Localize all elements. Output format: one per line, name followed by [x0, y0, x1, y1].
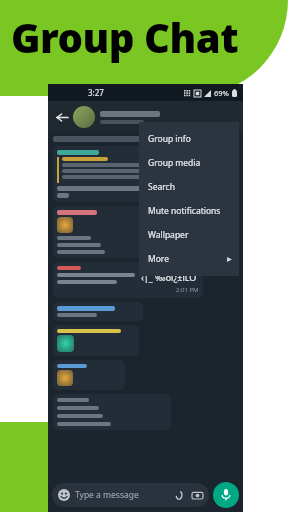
button[interactable]: Group avatar — [73, 106, 95, 128]
staticText: Group info — [148, 133, 191, 145]
staticText: Search — [148, 181, 175, 193]
button[interactable]: Type a message — [52, 483, 209, 507]
button[interactable]: Back — [54, 109, 70, 125]
button[interactable] — [53, 146, 188, 202]
button[interactable] — [53, 206, 173, 258]
staticText: 69% — [214, 88, 229, 98]
staticText: Wallpaper — [148, 229, 189, 241]
staticText: More — [148, 253, 169, 265]
button[interactable]: More — [139, 247, 239, 271]
staticText: Group media — [148, 157, 201, 169]
button[interactable]: Search — [139, 175, 239, 199]
staticText: Group Chat — [11, 10, 239, 64]
button[interactable]: Wallpaper — [139, 223, 239, 247]
button[interactable]: Voice message — [213, 482, 239, 508]
staticText: 3:27 — [88, 87, 104, 98]
staticText: ‹|_ ‰ol¿±ıLÖ — [141, 271, 197, 283]
button[interactable]: Group info — [139, 127, 239, 151]
staticText: Mute notifications — [148, 205, 221, 217]
staticText: Type a message — [75, 489, 139, 501]
button[interactable] — [53, 360, 125, 390]
button[interactable]: Attach — [173, 489, 185, 501]
button[interactable]: Camera — [191, 489, 203, 501]
button[interactable] — [53, 325, 139, 356]
button[interactable]: Mute notifications — [139, 199, 239, 223]
button[interactable] — [53, 394, 171, 430]
staticText: 2:01 PM — [176, 286, 199, 294]
button[interactable]: Group media — [139, 151, 239, 175]
button[interactable] — [53, 302, 143, 321]
button[interactable]: 2:01 PM — [53, 262, 203, 298]
